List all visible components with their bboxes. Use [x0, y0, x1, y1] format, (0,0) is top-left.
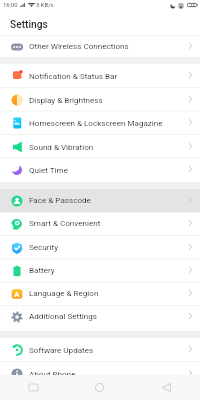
staticText: Smart & Convenient — [29, 218, 101, 227]
button[interactable]: Notification & Status Bar — [0, 64, 200, 88]
button[interactable]: Quiet Time — [0, 158, 200, 182]
staticText: Additional Settings — [29, 311, 98, 320]
staticText: 25 — [190, 3, 195, 7]
staticText: 16:00 — [3, 2, 18, 9]
staticText: A — [14, 290, 20, 299]
button[interactable]: Home — [66, 375, 133, 400]
button[interactable]: Homescreen & Lockscreen Magazine — [0, 111, 200, 135]
button[interactable]: Face & Passcode — [0, 189, 200, 212]
staticText: About Phone — [29, 369, 76, 378]
staticText: Face & Passcode — [29, 195, 91, 204]
staticText: Software Updates — [29, 345, 94, 354]
staticText: Battery — [29, 265, 55, 274]
button[interactable]: Display & Brightness — [0, 88, 200, 112]
staticText: Language & Region — [29, 288, 99, 297]
staticText: Quiet Time — [29, 165, 68, 174]
staticText: Display & Brightness — [29, 95, 103, 104]
button[interactable]: Software Updates — [0, 338, 200, 362]
staticText: Other Wireless Connections — [29, 41, 129, 50]
button[interactable]: Additional Settings — [0, 305, 200, 328]
button[interactable]: Sound & Vibration — [0, 135, 200, 159]
button[interactable]: Battery — [0, 259, 200, 282]
staticText: Sound & Vibration — [29, 142, 94, 151]
staticText: Settings — [10, 19, 48, 31]
staticText: Homescreen & Lockscreen Magazine — [29, 118, 163, 127]
button[interactable]: Other Wireless Connections — [0, 36, 200, 57]
button[interactable]: About Phone — [0, 362, 200, 386]
staticText: Security — [29, 242, 58, 251]
button[interactable]: Smart & Convenient — [0, 212, 200, 235]
button[interactable]: Security — [0, 236, 200, 259]
button[interactable]: A — [0, 282, 200, 305]
staticText: Notification & Status Bar — [29, 71, 118, 80]
button[interactable]: Recents — [0, 375, 66, 400]
staticText: 3 KB/s — [36, 2, 54, 9]
button[interactable]: Back — [133, 375, 200, 400]
